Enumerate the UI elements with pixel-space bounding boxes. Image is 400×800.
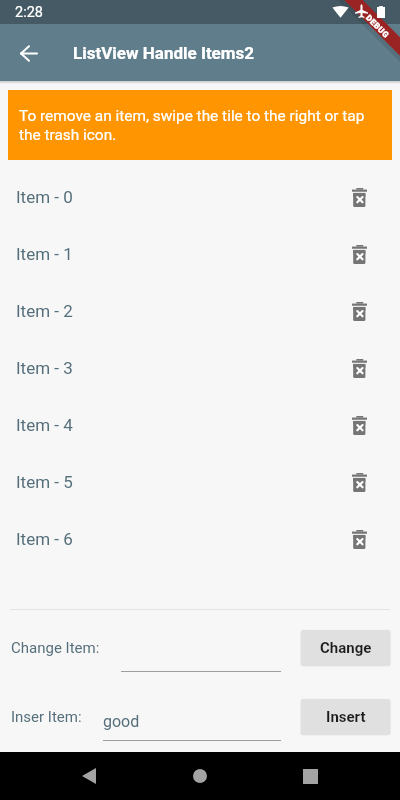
button[interactable]: Delete Item - 6: [342, 522, 376, 556]
button[interactable]: Home: [176, 752, 224, 800]
staticText: Item - 2: [16, 301, 73, 321]
other: Airplane mode: [355, 4, 368, 18]
other: Wi-Fi: [332, 5, 349, 18]
button[interactable]: Delete Item - 3: [342, 351, 376, 385]
button[interactable]: Delete Item - 1: [342, 237, 376, 271]
staticText: Item - 4: [16, 415, 73, 435]
staticText: DEBUG: [364, 13, 391, 40]
button[interactable]: Back: [5, 29, 53, 77]
staticText: good: [103, 712, 140, 731]
button[interactable]: Item - 4: [0, 396, 400, 453]
button[interactable]: Delete Item - 5: [342, 465, 376, 499]
staticText: 2:28: [15, 4, 43, 21]
button[interactable]: Delete Item - 4: [342, 408, 376, 442]
button[interactable]: Delete Item - 2: [342, 294, 376, 328]
staticText: To remove an item, swipe the tile to the…: [19, 107, 374, 143]
other: Battery: [377, 5, 385, 18]
button[interactable]: Delete Item - 0: [342, 180, 376, 214]
button[interactable]: good: [103, 699, 281, 741]
staticText: Item - 3: [16, 358, 73, 378]
button[interactable]: Back: [65, 752, 113, 800]
button[interactable]: Item - 1: [0, 225, 400, 282]
staticText: Item - 1: [16, 244, 73, 264]
staticText: ListView Handle Items2: [73, 43, 255, 63]
button[interactable]: Item - 2: [0, 282, 400, 339]
button[interactable]: Item - 5: [0, 453, 400, 510]
staticText: Change Item:: [11, 639, 100, 657]
staticText: Item - 5: [16, 472, 73, 492]
button[interactable]: [121, 630, 281, 672]
button[interactable]: Recent apps: [286, 752, 334, 800]
button[interactable]: Item - 0: [0, 168, 400, 225]
staticText: Item - 0: [16, 187, 73, 207]
staticText: Change: [320, 639, 372, 657]
staticText: Inser Item:: [11, 708, 82, 726]
staticText: Insert: [326, 708, 366, 726]
button[interactable]: Item - 3: [0, 339, 400, 396]
button[interactable]: Item - 6: [0, 510, 400, 567]
staticText: Item - 6: [16, 529, 73, 549]
button[interactable]: Insert: [301, 699, 390, 734]
button[interactable]: Change: [301, 630, 390, 665]
